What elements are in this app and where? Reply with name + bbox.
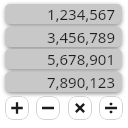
button[interactable]: Subtract (36, 96, 60, 120)
staticText: 7,890,123 (46, 72, 115, 92)
button[interactable]: 5,678,901 (5, 49, 122, 69)
staticText: 3,456,789 (46, 27, 115, 47)
staticText: 5,678,901 (46, 49, 115, 69)
button[interactable]: Multiply (68, 96, 92, 120)
button[interactable]: 3,456,789 (5, 27, 122, 47)
button[interactable]: Add (5, 96, 29, 120)
staticText: 1,234,567 (46, 4, 115, 24)
button[interactable]: 1,234,567 (5, 4, 122, 24)
button[interactable]: 7,890,123 (5, 72, 122, 92)
button[interactable]: Divide (99, 96, 123, 120)
